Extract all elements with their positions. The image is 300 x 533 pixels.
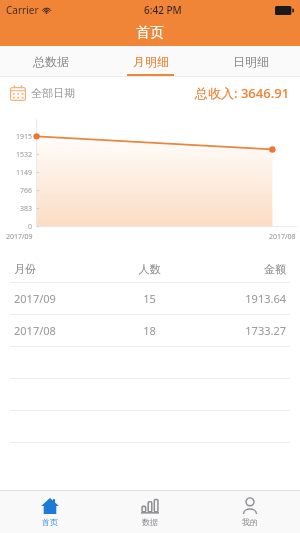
staticText: 月明细	[133, 54, 169, 69]
staticText: 1733.27	[195, 323, 286, 338]
staticText: 2017/08	[269, 232, 296, 242]
staticText: 6:42 PM	[144, 3, 182, 17]
button[interactable]: 首页	[0, 491, 100, 533]
staticText: 数据	[142, 517, 158, 527]
button[interactable]: 全部日期	[10, 85, 75, 101]
staticText: 总收入: 3646.91	[195, 84, 290, 102]
staticText: 总数据	[33, 54, 69, 69]
staticText: 1915	[0, 132, 32, 142]
staticText: 全部日期	[31, 86, 75, 100]
button[interactable]: 2017/08	[0, 315, 300, 347]
staticText: 0	[0, 222, 32, 232]
staticText: 首页	[42, 517, 58, 527]
staticText: 1532	[0, 150, 32, 160]
staticText: 2017/09	[6, 232, 33, 242]
staticText: 1913.64	[195, 291, 286, 306]
button[interactable]: 数据	[100, 491, 200, 533]
staticText: 18	[104, 323, 195, 338]
button[interactable]: 日明细	[200, 46, 300, 77]
button[interactable]: 总数据	[0, 46, 100, 77]
staticText: 2017/08	[14, 323, 104, 338]
staticText: 人数	[104, 262, 195, 276]
staticText: Carrier	[6, 3, 39, 17]
staticText: 我的	[242, 517, 258, 527]
staticText: 金额	[195, 262, 286, 276]
button[interactable]: 我的	[200, 491, 300, 533]
button[interactable]: 月明细	[100, 46, 200, 77]
button[interactable]: 2017/09	[0, 283, 300, 315]
staticText: 月份	[14, 262, 104, 276]
staticText: 首页	[136, 24, 164, 42]
staticText: 383	[0, 204, 32, 214]
staticText: 日明细	[233, 54, 269, 69]
staticText: 766	[0, 186, 32, 196]
staticText: 1149	[0, 168, 32, 178]
staticText: 15	[104, 291, 195, 306]
staticText: 2017/09	[14, 291, 104, 306]
